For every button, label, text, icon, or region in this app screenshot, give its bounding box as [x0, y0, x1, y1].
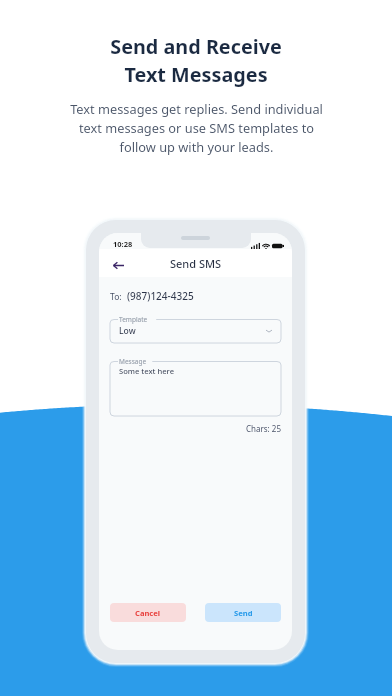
staticText: Some text here [119, 366, 175, 376]
button[interactable]: Send [205, 603, 281, 622]
staticText: (987)124-4325 [127, 289, 194, 303]
staticText: Template [119, 315, 148, 324]
button[interactable]: Back [110, 257, 126, 273]
staticText: Low [119, 325, 136, 337]
button[interactable]: Cancel [110, 603, 186, 622]
button[interactable]: Template [110, 319, 281, 343]
staticText: Send and Receive Text Messages [110, 33, 282, 88]
staticText: Chars: 25 [246, 423, 281, 434]
staticText: 10:28 [113, 239, 133, 249]
staticText: To: [110, 291, 122, 303]
staticText: Message [119, 357, 147, 366]
staticText: Cancel [135, 608, 161, 618]
staticText: Send [234, 608, 253, 618]
staticText: Send SMS [170, 256, 222, 271]
staticText: Text messages get replies. Send individu… [70, 100, 323, 155]
button[interactable]: Message [110, 361, 281, 416]
